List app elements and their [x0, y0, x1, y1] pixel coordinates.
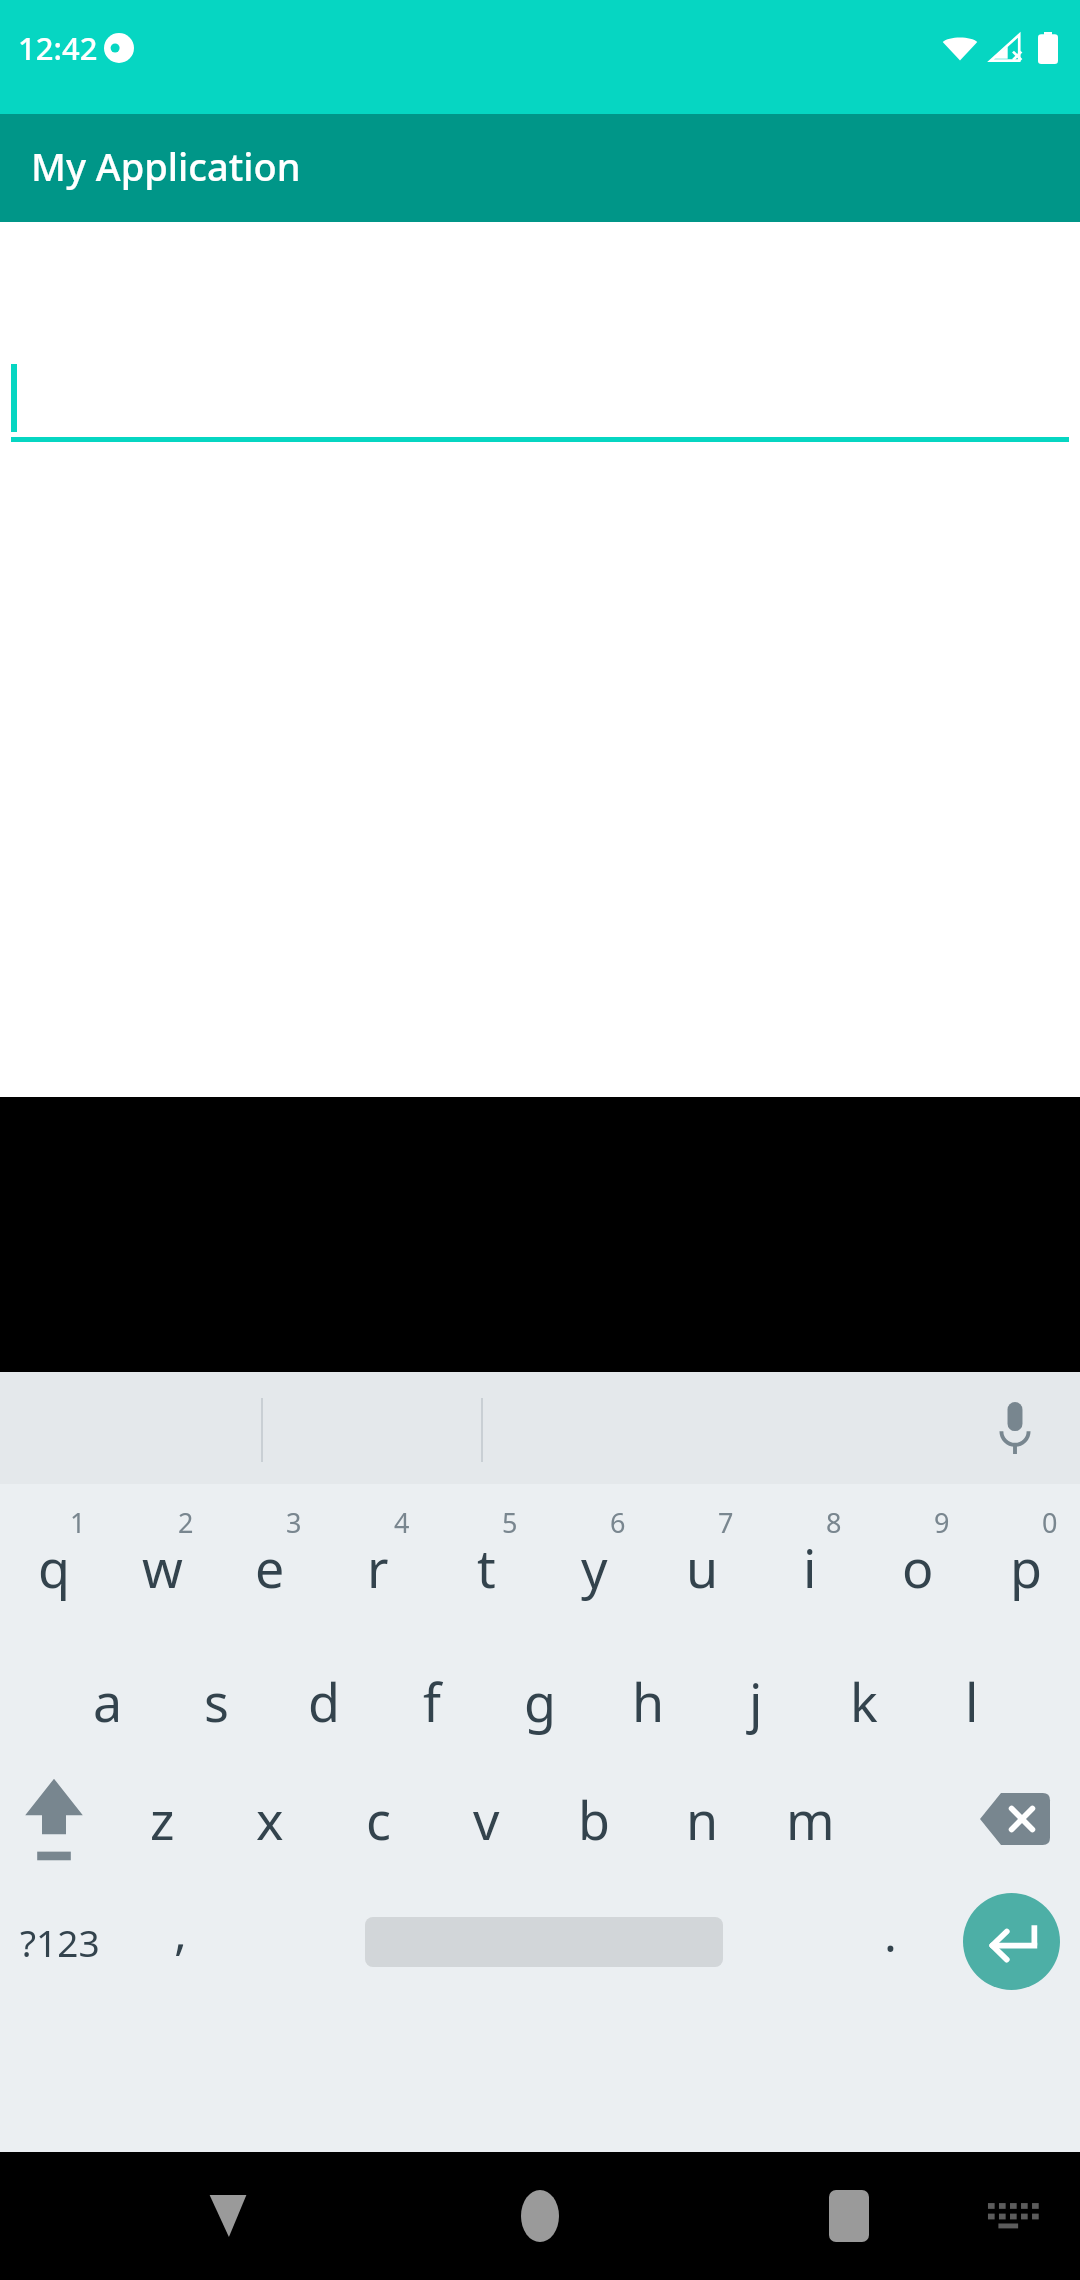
- button[interactable]: 4: [324, 1484, 432, 1644]
- button[interactable]: h: [594, 1644, 702, 1759]
- staticText: 5: [502, 1504, 518, 1541]
- button[interactable]: Shift: [0, 1759, 108, 1879]
- button[interactable]: 6: [540, 1484, 648, 1644]
- staticText: 12:42: [18, 27, 98, 69]
- staticText: v: [473, 1784, 500, 1855]
- staticText: 9: [934, 1504, 950, 1541]
- button[interactable]: a: [54, 1644, 162, 1759]
- staticText: 2: [178, 1504, 194, 1541]
- button[interactable]: s: [162, 1644, 270, 1759]
- button[interactable]: 5: [432, 1484, 540, 1644]
- staticText: p: [1010, 1532, 1042, 1603]
- staticText: f: [423, 1666, 441, 1737]
- button[interactable]: Back: [182, 2152, 274, 2280]
- staticText: j: [749, 1666, 763, 1737]
- button[interactable]: j: [702, 1644, 810, 1759]
- button[interactable]: Backspace: [950, 1759, 1080, 1879]
- button[interactable]: m: [756, 1759, 864, 1879]
- button[interactable]: x: [216, 1759, 324, 1879]
- button[interactable]: Recent apps: [803, 2152, 895, 2280]
- button[interactable]: 1: [0, 1484, 108, 1644]
- staticText: ,: [174, 1899, 187, 1964]
- staticText: 3: [286, 1504, 302, 1541]
- staticText: e: [255, 1532, 285, 1603]
- button[interactable]: 8: [756, 1484, 864, 1644]
- staticText: r: [367, 1532, 389, 1603]
- button[interactable]: .: [838, 1879, 942, 2004]
- staticText: a: [93, 1666, 123, 1737]
- staticText: z: [150, 1784, 175, 1855]
- staticText: n: [686, 1784, 719, 1855]
- button[interactable]: 7: [648, 1484, 756, 1644]
- staticText: b: [578, 1784, 610, 1855]
- staticText: k: [850, 1666, 878, 1737]
- staticText: My Application: [31, 140, 301, 192]
- button[interactable]: Home: [494, 2152, 586, 2280]
- button[interactable]: k: [810, 1644, 918, 1759]
- button[interactable]: n: [648, 1759, 756, 1879]
- staticText: 4: [394, 1504, 410, 1541]
- staticText: g: [524, 1666, 556, 1737]
- staticText: o: [902, 1532, 934, 1603]
- button[interactable]: 2: [108, 1484, 216, 1644]
- staticText: q: [38, 1532, 70, 1603]
- button[interactable]: Enter: [942, 1879, 1080, 2004]
- staticText: 0: [1042, 1504, 1058, 1541]
- staticText: .: [884, 1901, 897, 1966]
- button[interactable]: g: [486, 1644, 594, 1759]
- staticText: ?123: [20, 1917, 100, 1967]
- staticText: 1: [70, 1504, 86, 1541]
- button[interactable]: c: [324, 1759, 432, 1879]
- button[interactable]: z: [108, 1759, 216, 1879]
- button[interactable]: f: [378, 1644, 486, 1759]
- button[interactable]: ,: [120, 1879, 240, 2004]
- button[interactable]: 9: [864, 1484, 972, 1644]
- staticText: 7: [718, 1504, 734, 1541]
- staticText: d: [308, 1666, 340, 1737]
- staticText: u: [686, 1532, 719, 1603]
- button[interactable]: 3: [216, 1484, 324, 1644]
- button[interactable]: 0: [972, 1484, 1080, 1644]
- staticText: x: [256, 1784, 284, 1855]
- staticText: s: [204, 1666, 229, 1737]
- staticText: l: [965, 1666, 979, 1737]
- button[interactable]: ?123: [0, 1879, 120, 2004]
- staticText: 6: [610, 1504, 626, 1541]
- button[interactable]: b: [540, 1759, 648, 1879]
- button[interactable]: l: [918, 1644, 1026, 1759]
- button[interactable]: v: [432, 1759, 540, 1879]
- staticText: 8: [826, 1504, 842, 1541]
- button[interactable]: Switch keyboard: [966, 2152, 1054, 2280]
- button[interactable]: [0, 222, 1080, 454]
- button[interactable]: Voice input: [978, 1391, 1052, 1465]
- staticText: c: [366, 1784, 391, 1855]
- staticText: t: [477, 1532, 496, 1603]
- staticText: y: [581, 1532, 608, 1603]
- staticText: i: [803, 1532, 817, 1603]
- button[interactable]: d: [270, 1644, 378, 1759]
- button[interactable]: Space: [250, 1879, 838, 2004]
- staticText: m: [786, 1784, 835, 1855]
- staticText: h: [632, 1666, 665, 1737]
- staticText: w: [142, 1532, 183, 1603]
